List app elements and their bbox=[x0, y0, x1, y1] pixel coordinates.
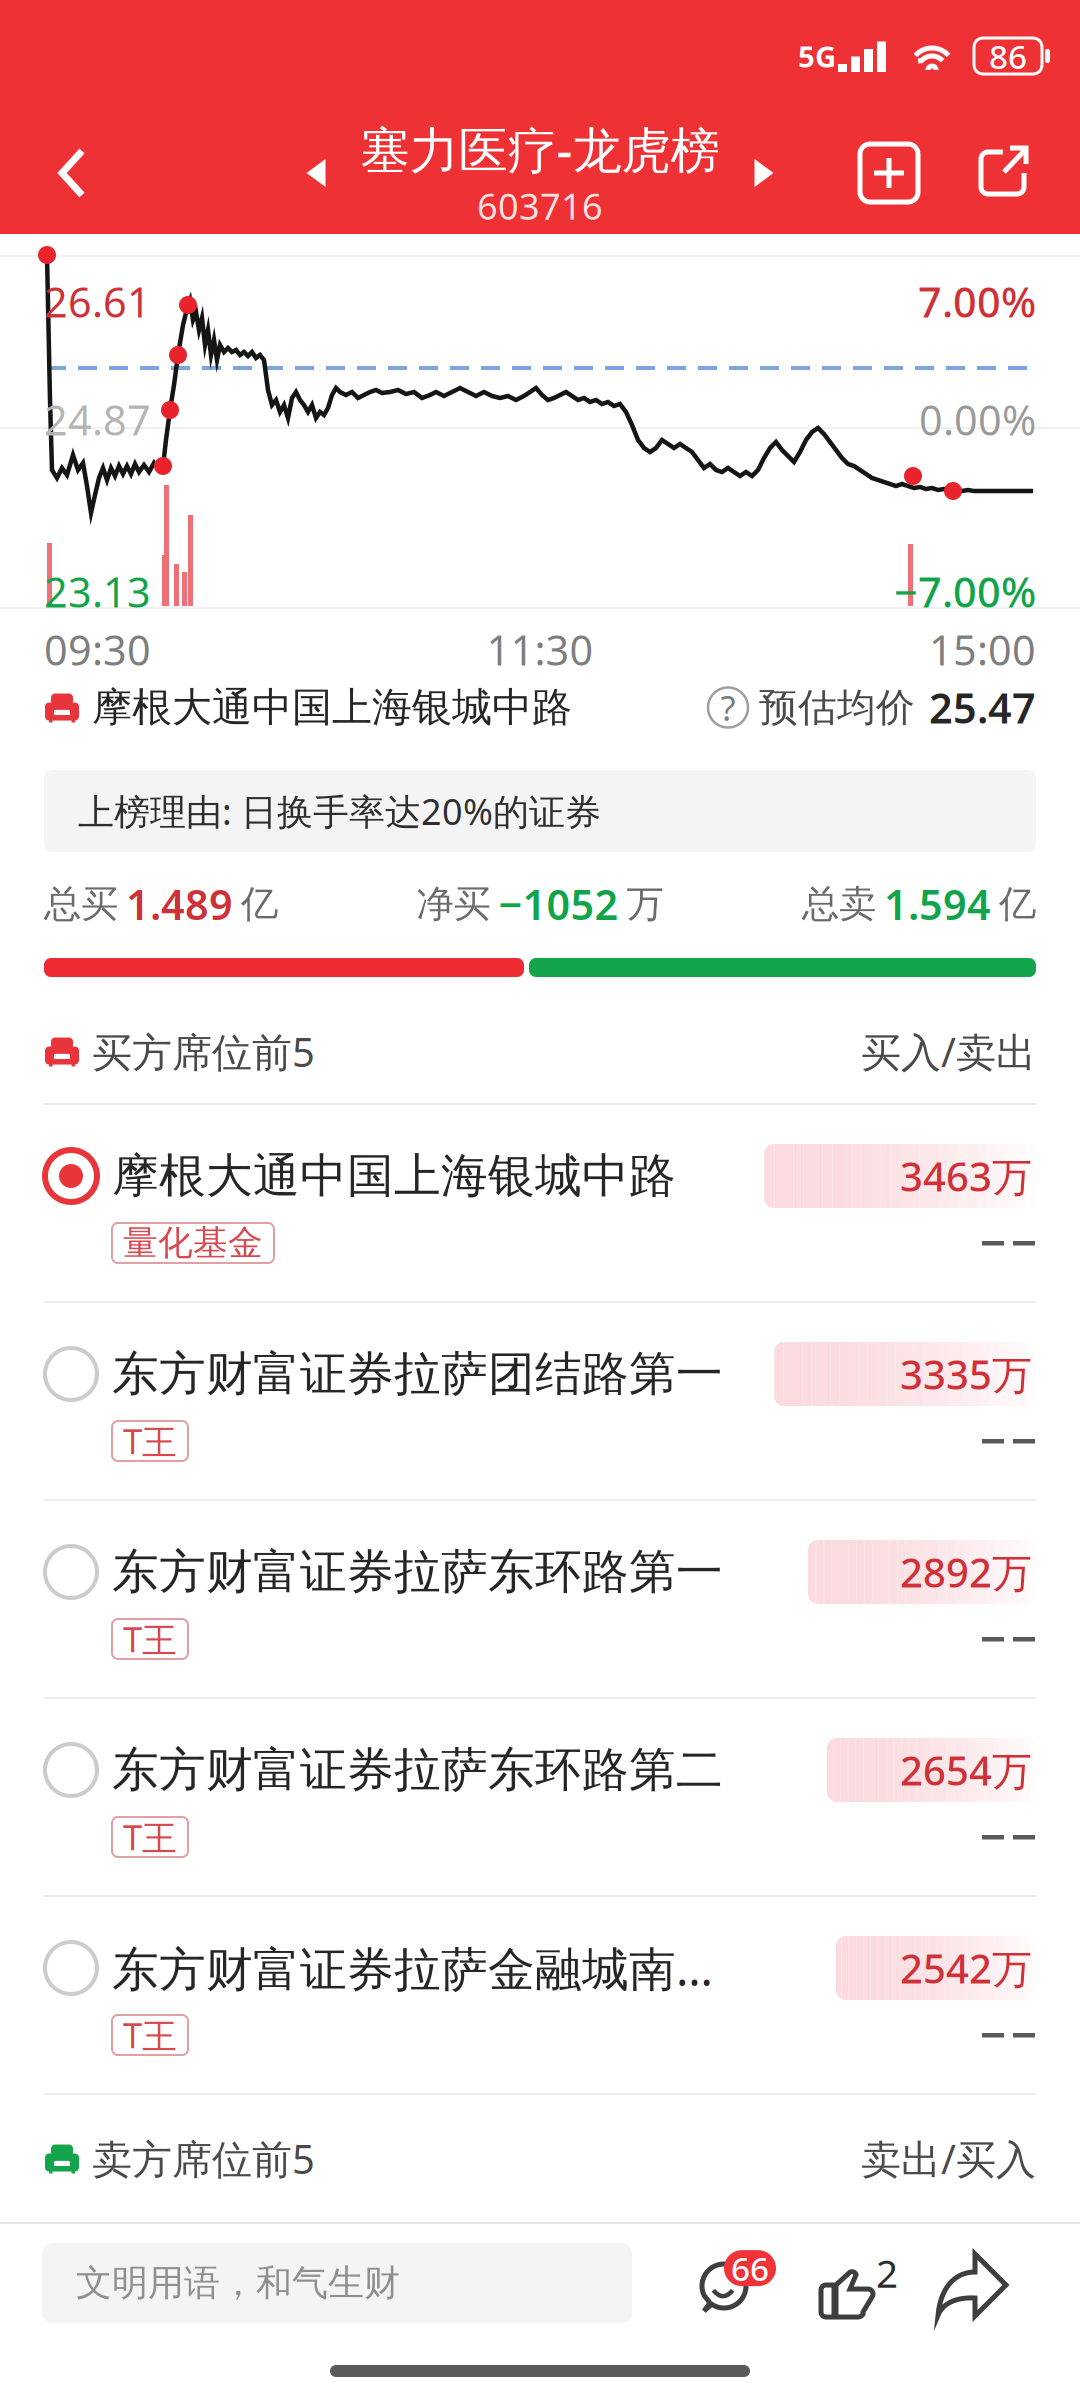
staticText: ? bbox=[720, 684, 735, 730]
staticText: 2892万 bbox=[900, 1545, 1032, 1598]
staticText: 11:30 bbox=[486, 622, 593, 677]
staticText: 5G bbox=[798, 36, 836, 75]
staticText: 东方财富证券拉萨金融城南… bbox=[112, 1937, 713, 1999]
staticText: 0.00% bbox=[919, 392, 1036, 447]
staticText: 亿 bbox=[241, 881, 278, 927]
button[interactable]: Back bbox=[18, 112, 128, 234]
button[interactable]: Like bbox=[776, 2245, 904, 2321]
staticText: −1052 bbox=[498, 877, 618, 931]
button[interactable]: 东方财富证券拉萨东环路第二 bbox=[0, 1699, 1080, 1895]
staticText: −7.00% bbox=[894, 564, 1036, 619]
staticText: 万 bbox=[626, 881, 663, 927]
staticText: 卖出/买入 bbox=[861, 2132, 1036, 2185]
button[interactable]: 文明用语，和气生财 bbox=[42, 2243, 632, 2323]
staticText: 1.594 bbox=[884, 877, 991, 931]
staticText: 66 bbox=[731, 2246, 769, 2290]
staticText: 7.00% bbox=[918, 274, 1036, 329]
staticText: 2 bbox=[876, 2247, 898, 2298]
staticText: 1.489 bbox=[126, 877, 233, 931]
staticText: 2542万 bbox=[900, 1941, 1032, 1994]
staticText: T王 bbox=[123, 1814, 177, 1860]
button[interactable]: 东方财富证券拉萨金融城南… bbox=[0, 1897, 1080, 2093]
button[interactable]: Share bbox=[904, 2245, 1018, 2321]
staticText: 上榜理由: 日换手率达20%的证券 bbox=[78, 787, 601, 835]
staticText: 3463万 bbox=[900, 1149, 1032, 1202]
button[interactable]: Previous stock bbox=[294, 112, 338, 234]
button[interactable]: 摩根大通中国上海银城中路 bbox=[0, 1105, 1080, 1301]
staticText: 买方席位前5 bbox=[92, 1025, 315, 1078]
staticText: 摩根大通中国上海银城中路 bbox=[92, 683, 572, 732]
staticText: 东方财富证券拉萨东环路第一 bbox=[112, 1543, 723, 1601]
staticText: 26.61 bbox=[44, 274, 151, 329]
button[interactable]: 东方财富证券拉萨团结路第一 bbox=[0, 1303, 1080, 1499]
staticText: 塞力医疗-龙虎榜 bbox=[360, 116, 719, 182]
button[interactable]: Comments bbox=[686, 2245, 776, 2321]
button[interactable]: 东方财富证券拉萨东环路第一 bbox=[0, 1501, 1080, 1697]
staticText: T王 bbox=[123, 2012, 177, 2058]
staticText: 23.13 bbox=[44, 564, 151, 619]
staticText: 亿 bbox=[999, 881, 1036, 927]
staticText: 25.47 bbox=[929, 680, 1036, 735]
staticText: 东方财富证券拉萨东环路第二 bbox=[112, 1741, 723, 1799]
staticText: T王 bbox=[123, 1616, 177, 1662]
staticText: 净买 bbox=[416, 881, 490, 927]
staticText: 预估均价 bbox=[759, 684, 915, 731]
staticText: 603716 bbox=[477, 182, 603, 230]
staticText: 86 bbox=[989, 34, 1027, 78]
staticText: 总卖 bbox=[802, 881, 876, 927]
button[interactable]: Next stock bbox=[741, 112, 785, 234]
staticText: 09:30 bbox=[44, 622, 151, 677]
staticText: 15:00 bbox=[929, 622, 1036, 677]
staticText: 文明用语，和气生财 bbox=[76, 2261, 400, 2305]
staticText: 东方财富证券拉萨团结路第一 bbox=[112, 1345, 723, 1403]
staticText: 3335万 bbox=[900, 1347, 1032, 1400]
button[interactable]: Share bbox=[970, 112, 1036, 234]
staticText: T王 bbox=[123, 1418, 177, 1464]
staticText: 买入/卖出 bbox=[861, 1025, 1036, 1078]
staticText: 24.87 bbox=[44, 392, 151, 447]
staticText: 卖方席位前5 bbox=[92, 2132, 315, 2185]
button[interactable]: Add to watchlist bbox=[856, 112, 922, 234]
staticText: 摩根大通中国上海银城中路 bbox=[112, 1147, 676, 1205]
staticText: 总买 bbox=[44, 881, 118, 927]
staticText: 量化基金 bbox=[123, 1222, 263, 1264]
staticText: 2654万 bbox=[900, 1743, 1032, 1796]
